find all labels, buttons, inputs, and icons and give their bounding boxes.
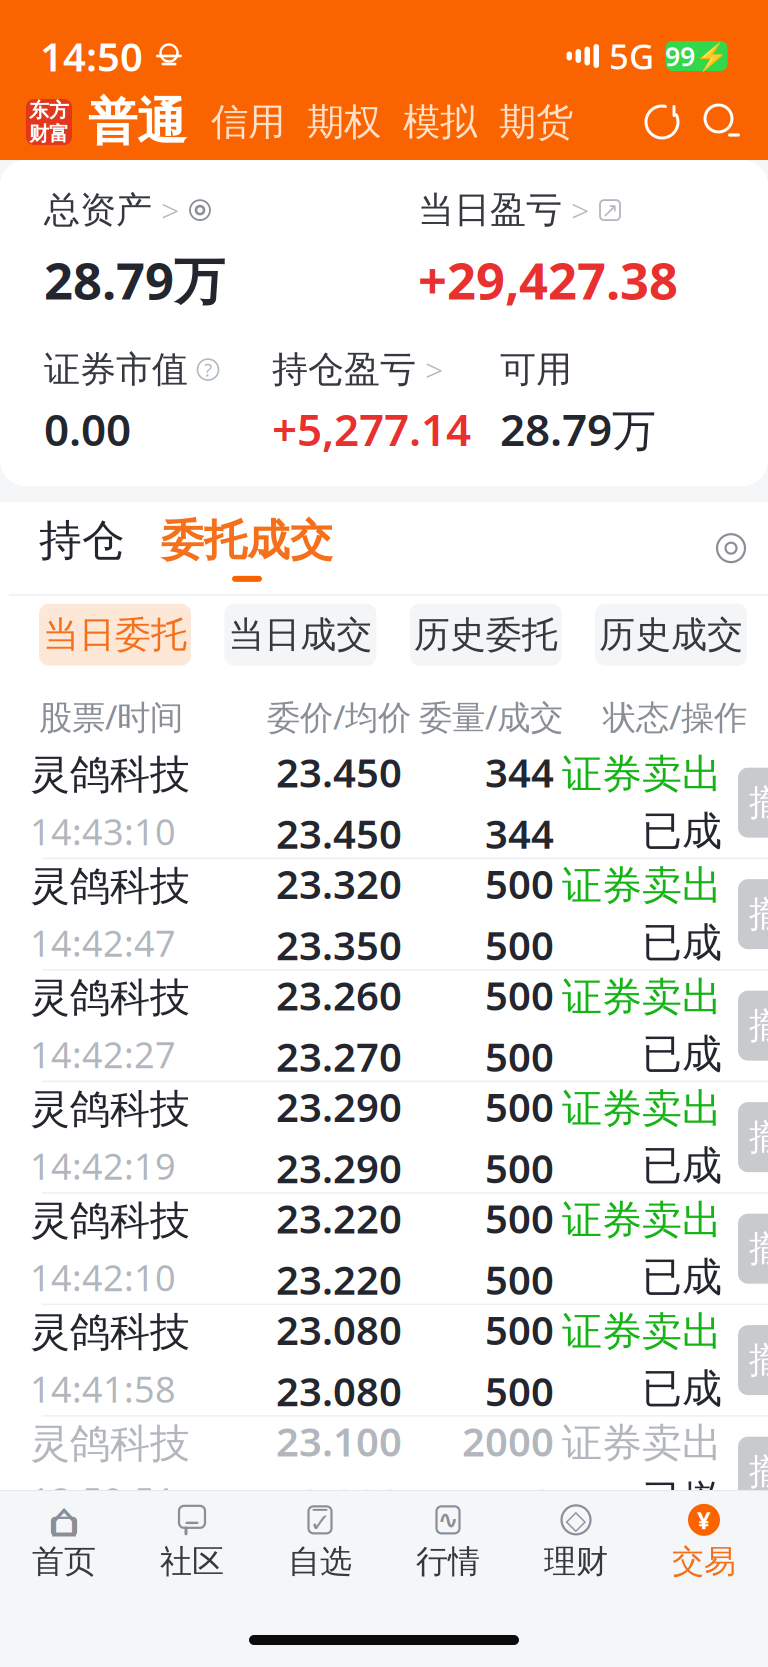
button[interactable]: 撤单 (738, 1214, 768, 1284)
staticText: 14:42:10 (30, 1253, 176, 1301)
button[interactable]: 撤单 (738, 1102, 768, 1172)
staticText: 持仓 (39, 514, 125, 567)
button[interactable]: 社区 (128, 1495, 256, 1589)
staticText: 500 (485, 1080, 554, 1133)
staticText: 灵鸽科技 (30, 973, 190, 1022)
staticText: 东方 (29, 98, 69, 122)
button[interactable]: 撤单 (738, 768, 768, 838)
staticText: 当日盈亏 (418, 188, 562, 232)
button[interactable]: 刷新 (642, 102, 682, 142)
staticText: 灵鸽科技 (30, 1419, 190, 1468)
staticText: 可用 (500, 347, 572, 392)
button[interactable]: 当日委托 (39, 604, 191, 666)
staticText: > (571, 189, 589, 231)
button[interactable]: 信用 (200, 91, 296, 153)
button[interactable]: 灵鸽科技 (0, 748, 768, 859)
staticText: 14:42:27 (30, 1030, 176, 1078)
staticText: 普通 (88, 92, 186, 152)
button[interactable]: 灵鸽科技 (0, 1082, 768, 1194)
staticText: 证券卖出 (562, 1307, 722, 1356)
button[interactable]: 当日盈亏 (418, 186, 622, 234)
staticText: 已撤 (642, 1476, 722, 1525)
button[interactable]: 历史成交 (595, 604, 747, 666)
staticText: 13:59:51 (30, 1476, 176, 1524)
button[interactable]: 灵鸽科技 (0, 971, 768, 1082)
button[interactable]: 撤单 (738, 879, 768, 949)
staticText: 灵鸽科技 (30, 1196, 190, 1245)
button[interactable]: ◇ (512, 1495, 640, 1589)
staticText: 撤 (749, 1449, 768, 1494)
staticText: 500 (485, 1253, 554, 1306)
staticText: 23.450 (276, 807, 402, 860)
staticText: 2000 (462, 1414, 554, 1468)
staticText: 500 (485, 1191, 554, 1245)
staticText: 当日委托 (43, 612, 187, 657)
button[interactable]: ✓ (256, 1495, 384, 1589)
staticText: 0 (531, 1476, 554, 1529)
button[interactable]: 撤单 (738, 1437, 768, 1507)
staticText: 灵鸽科技 (30, 1308, 190, 1357)
staticText: 23.350 (276, 918, 402, 971)
button[interactable]: ∿ (384, 1495, 512, 1589)
button[interactable]: 当日成交 (224, 604, 376, 666)
button[interactable]: 撤单 (738, 1325, 768, 1395)
staticText: 自选 (288, 1542, 352, 1581)
staticText: 14:42:47 (30, 919, 176, 967)
staticText: 0.000 (299, 1476, 402, 1529)
staticText: 信用 (211, 99, 285, 145)
staticText: 500 (485, 857, 554, 910)
staticText: 历史成交 (599, 612, 743, 657)
staticText: ∿ (437, 1505, 458, 1534)
button[interactable]: 持仓 (39, 512, 125, 584)
staticText: 已成 (642, 1141, 722, 1190)
button[interactable]: 普通 (72, 88, 186, 156)
staticText: 总资产 (44, 188, 152, 232)
staticText: ? (204, 357, 212, 382)
staticText: 灵鸽科技 (30, 1085, 190, 1134)
button[interactable]: 灵鸽科技 (0, 1417, 768, 1528)
button[interactable]: 搜索 (702, 102, 742, 142)
button[interactable]: 期货 (488, 91, 584, 153)
button[interactable]: 总资产 (44, 186, 212, 234)
staticText: 已成 (642, 807, 722, 856)
staticText: 500 (485, 1364, 554, 1417)
button[interactable]: 历史委托 (410, 604, 562, 666)
staticText: 证券卖出 (562, 1195, 722, 1245)
button[interactable]: 模拟 (392, 91, 488, 153)
staticText: 23.220 (276, 1253, 402, 1306)
staticText: 500 (485, 918, 554, 971)
staticText: 23.080 (276, 1364, 402, 1417)
button[interactable]: 委托成交 (161, 512, 333, 584)
staticText: 14:43:10 (30, 807, 176, 855)
button[interactable]: 期权 (296, 91, 392, 153)
button[interactable]: 灵鸽科技 (0, 859, 768, 971)
button[interactable]: 撤单 (738, 991, 768, 1061)
staticText: 理财 (544, 1542, 608, 1581)
staticText: 期权 (307, 99, 381, 145)
staticText: 23.320 (276, 857, 402, 910)
staticText: 证券卖出 (562, 1084, 722, 1133)
button[interactable]: 灵鸽科技 (0, 1194, 768, 1305)
staticText: 已成 (642, 1030, 722, 1079)
button[interactable]: 持仓盈亏 (272, 347, 500, 458)
staticText: 首页 (32, 1542, 96, 1581)
staticText: 证券卖出 (562, 749, 722, 799)
staticText: 14:41:58 (30, 1365, 176, 1413)
staticText: 委价/均价 (267, 694, 411, 739)
staticText: 23.260 (276, 968, 402, 1022)
staticText: 证券卖出 (562, 1418, 722, 1468)
staticText: 500 (485, 968, 554, 1022)
button[interactable]: 灵鸽科技 (0, 1305, 768, 1417)
staticText: 证券市值 (44, 347, 188, 392)
staticText: 状态/操作 (603, 694, 747, 739)
button[interactable]: ¥ (640, 1495, 768, 1589)
staticText: 撤 (749, 892, 768, 936)
staticText: 23.100 (276, 1414, 402, 1468)
staticText: 99⚡ (665, 38, 728, 74)
button[interactable]: 设置 (715, 532, 747, 564)
button[interactable]: ⌂ (0, 1495, 128, 1589)
staticText: 28.79万 (500, 400, 656, 458)
staticText: 5G (609, 33, 654, 79)
staticText: 28.79万 (44, 246, 225, 313)
staticText: 14:50 (40, 29, 143, 82)
